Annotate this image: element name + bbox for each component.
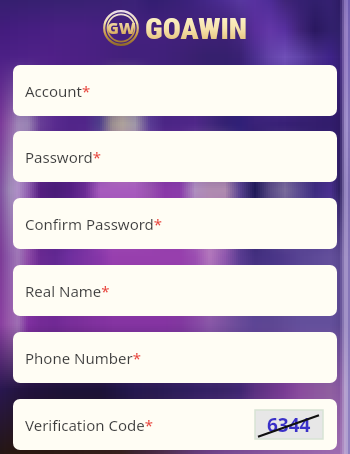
button[interactable]: Confirm Password* <box>13 198 337 249</box>
button[interactable]: Account* <box>13 65 337 116</box>
staticText: Account* <box>25 81 91 101</box>
staticText: Password* <box>25 147 102 167</box>
staticText: Real Name* <box>25 281 110 301</box>
button[interactable]: Real Name* <box>13 265 337 316</box>
button[interactable]: Phone Number* <box>13 332 337 383</box>
button[interactable]: Refresh verification code <box>255 410 323 439</box>
button[interactable]: Verification Code* <box>13 399 337 450</box>
staticText: Confirm Password* <box>25 214 163 234</box>
staticText: GOAWIN <box>145 11 248 46</box>
staticText: 6344 <box>267 412 311 438</box>
staticText: GW <box>107 17 136 39</box>
staticText: Phone Number* <box>25 348 141 368</box>
staticText: Verification Code* <box>25 415 153 435</box>
button[interactable]: Password* <box>13 131 337 182</box>
